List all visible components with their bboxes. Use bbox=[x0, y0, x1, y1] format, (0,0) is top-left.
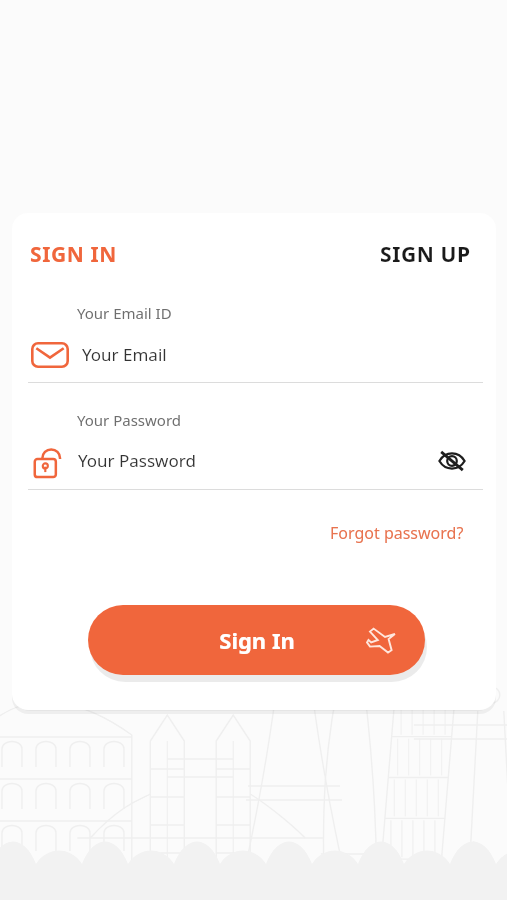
button[interactable]: Forgot password? bbox=[330, 522, 464, 544]
staticText: Forgot password? bbox=[330, 522, 464, 544]
button[interactable]: SIGN IN bbox=[30, 240, 117, 269]
other: Password bbox=[30, 444, 64, 480]
button[interactable]: Show password bbox=[428, 438, 476, 484]
staticText: Your Email bbox=[82, 343, 167, 366]
staticText: Sign In bbox=[219, 625, 295, 655]
staticText: Your Password bbox=[78, 449, 196, 472]
staticText: SIGN IN bbox=[30, 240, 117, 269]
other: Email bbox=[31, 342, 69, 368]
button[interactable]: SIGN UP bbox=[380, 240, 471, 269]
staticText: Your Password bbox=[77, 410, 182, 430]
staticText: SIGN UP bbox=[380, 240, 471, 269]
button[interactable]: Email bbox=[28, 332, 483, 376]
staticText: Your Email ID bbox=[77, 303, 172, 323]
button[interactable]: Password bbox=[28, 438, 483, 484]
button[interactable]: Sign In bbox=[88, 605, 425, 675]
